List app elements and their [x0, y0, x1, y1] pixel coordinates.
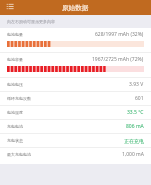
- button[interactable]: 电池电量: [0, 28, 151, 53]
- staticText: 1967/2725 mAh (72%): [92, 56, 144, 63]
- staticText: 循环充电次数: [7, 96, 31, 101]
- staticText: 电池电量: [7, 32, 23, 37]
- staticText: 601: [135, 95, 144, 102]
- button[interactable]: 电池容量: [0, 53, 151, 78]
- staticText: 电池容量: [7, 57, 23, 62]
- button[interactable]: 电池电压: [0, 78, 151, 91]
- staticText: 3.93 V: [129, 81, 144, 88]
- staticText: 充电状态: [7, 138, 23, 143]
- staticText: 原始数据: [62, 4, 89, 12]
- staticText: 33.5 °C: [127, 109, 144, 116]
- button[interactable]: 充电状态: [0, 134, 151, 147]
- staticText: 806 mA: [126, 123, 144, 130]
- button[interactable]: Menu: [3, 1, 16, 14]
- staticText: 充电电流: [7, 124, 23, 129]
- staticText: 电池温度: [7, 110, 23, 115]
- staticText: 628/1997 mAh (32%): [95, 31, 144, 38]
- button[interactable]: 电池温度: [0, 106, 151, 119]
- staticText: 最大充电电流: [7, 152, 31, 157]
- staticText: 电池电压: [7, 82, 23, 87]
- staticText: 正在充电: [124, 138, 144, 144]
- staticText: 1,000 mA: [122, 151, 144, 158]
- button[interactable]: 充电电流: [0, 120, 151, 133]
- button[interactable]: 最大充电电流: [0, 148, 151, 161]
- staticText: 向左右滑动可显示更多内容: [7, 19, 55, 24]
- button[interactable]: 循环充电次数: [0, 92, 151, 105]
